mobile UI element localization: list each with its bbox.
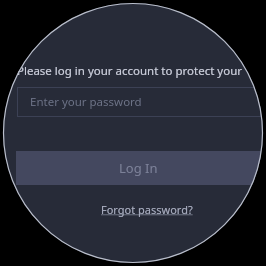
button[interactable]: Forgot password? <box>97 199 197 220</box>
staticText: Enter your password <box>30 94 142 110</box>
staticText: Forgot password? <box>101 202 193 217</box>
button[interactable]: Enter your password <box>17 87 261 117</box>
staticText: Log In <box>119 159 158 177</box>
staticText: Please log in your account to protect yo… <box>17 63 249 79</box>
button[interactable]: Log In <box>16 151 261 185</box>
